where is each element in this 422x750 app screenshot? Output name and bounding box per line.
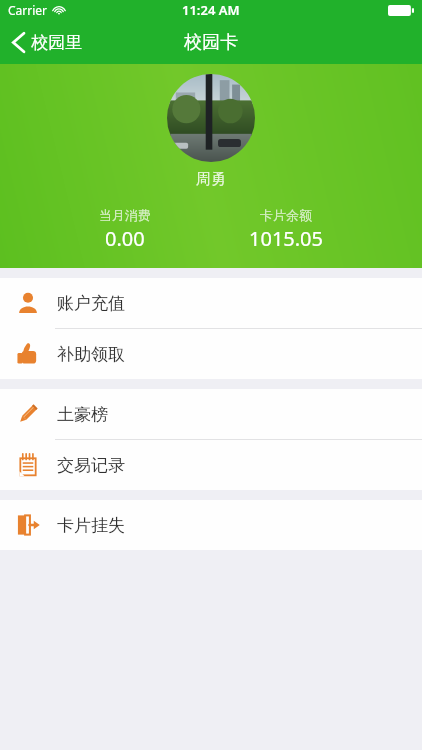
button[interactable]: 交易记录 bbox=[0, 440, 422, 490]
staticText: 周勇 bbox=[196, 170, 226, 189]
button[interactable]: 补助领取 bbox=[0, 329, 422, 379]
button[interactable]: 卡片挂失 bbox=[0, 500, 422, 550]
staticText: 1015.05 bbox=[249, 225, 323, 252]
staticText: 补助领取 bbox=[57, 344, 125, 365]
staticText: Carrier bbox=[8, 2, 48, 18]
staticText: 校园里 bbox=[31, 32, 82, 53]
staticText: 当月消费 bbox=[99, 207, 151, 223]
button[interactable]: 土豪榜 bbox=[0, 389, 422, 439]
staticText: 0.00 bbox=[105, 225, 145, 252]
button[interactable]: Profile photo bbox=[167, 74, 255, 162]
staticText: 交易记录 bbox=[57, 455, 125, 476]
button[interactable]: 账户充值 bbox=[0, 278, 422, 328]
button[interactable]: 校园里 bbox=[0, 24, 96, 61]
staticText: 账户充值 bbox=[57, 293, 125, 314]
staticText: 11:24 AM bbox=[182, 1, 240, 19]
staticText: 校园卡 bbox=[184, 31, 238, 54]
staticText: 土豪榜 bbox=[57, 404, 108, 425]
staticText: 卡片余额 bbox=[260, 207, 312, 223]
staticText: 卡片挂失 bbox=[57, 515, 125, 536]
